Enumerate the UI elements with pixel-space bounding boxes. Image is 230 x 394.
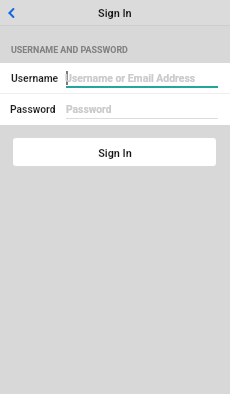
staticText: Username <box>11 72 59 84</box>
staticText: Password <box>66 103 112 115</box>
button[interactable]: Password <box>0 94 230 125</box>
button[interactable]: Username <box>0 63 230 93</box>
staticText: USERNAME AND PASSWORD <box>11 45 128 55</box>
staticText: Sign In <box>98 147 132 160</box>
staticText: Sign In <box>98 7 132 20</box>
button[interactable]: Sign In <box>13 138 216 166</box>
staticText: Username or Email Address <box>65 72 196 84</box>
button[interactable]: Back <box>0 1 24 25</box>
staticText: Password <box>10 103 56 115</box>
